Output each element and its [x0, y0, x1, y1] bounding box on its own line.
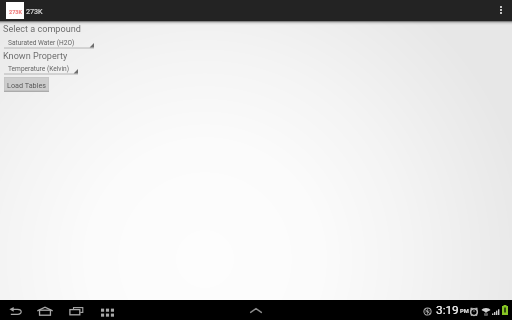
button[interactable]: Apps	[99, 300, 115, 320]
button[interactable]: Expand notifications	[247, 304, 265, 316]
button[interactable]: Back	[6, 300, 24, 320]
staticText: 273K	[9, 9, 22, 15]
staticText: Load Tables	[7, 81, 47, 89]
button[interactable]: Saturated Water (H2O)	[4, 38, 94, 49]
button[interactable]: Load Tables	[4, 77, 49, 92]
button[interactable]: More options	[490, 0, 512, 21]
staticText: Saturated Water (H2O)	[8, 39, 75, 47]
staticText: 3:19	[436, 303, 459, 317]
button[interactable]: Home	[36, 300, 54, 320]
staticText: 273K	[26, 7, 43, 15]
staticText: PM	[460, 308, 469, 315]
button[interactable]: Temperature (Kelvin)	[4, 64, 78, 75]
button[interactable]: Recent apps	[68, 300, 84, 320]
staticText: Known Property	[3, 51, 68, 62]
staticText: Select a compound	[3, 24, 81, 35]
staticText: Temperature (Kelvin)	[8, 65, 70, 73]
